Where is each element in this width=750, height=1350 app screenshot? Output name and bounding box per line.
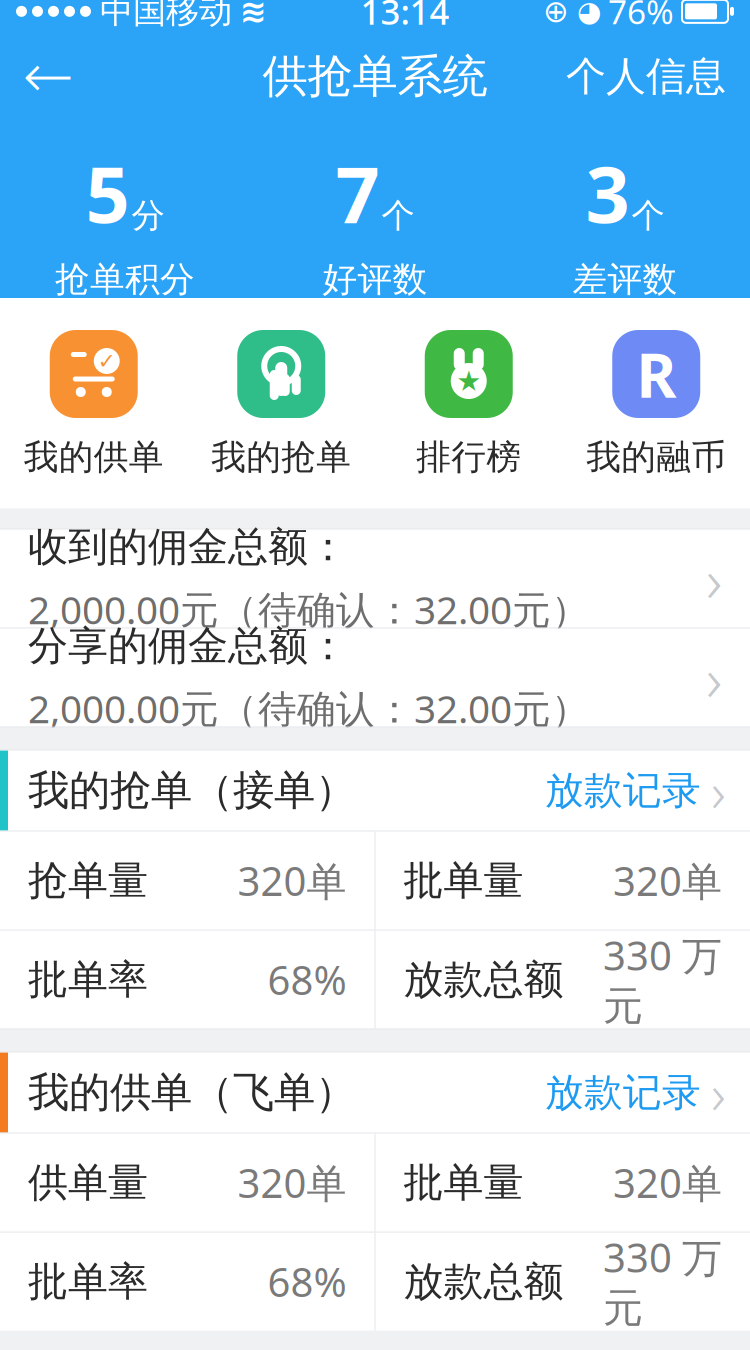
staticText: ★ [456, 365, 481, 397]
staticText: 中国移动 [100, 0, 232, 32]
staticText: 排行榜 [416, 436, 521, 479]
staticText: 我的供单 [24, 436, 164, 479]
button[interactable]: R [562, 330, 750, 479]
staticText: 批单量 [403, 1158, 523, 1207]
button[interactable]: 个人信息 [542, 38, 750, 114]
staticText: 我的抢单 [211, 436, 351, 479]
staticText: ✓ [98, 349, 116, 373]
staticText: 我的供单（飞单） [28, 1067, 356, 1118]
staticText: 2,000.00元（待确认：32.00元） [28, 682, 590, 734]
staticText: › [711, 753, 726, 828]
staticText: 我的融币 [586, 436, 726, 479]
staticText: 我的抢单（接单） [28, 765, 356, 816]
staticText: 供单量 [28, 1158, 148, 1207]
staticText: 7 [335, 141, 379, 244]
staticText: ← [22, 42, 73, 111]
staticText: 68% [267, 1255, 346, 1308]
button[interactable]: ✓ [0, 330, 187, 479]
staticText: ◕ [577, 0, 601, 27]
staticText: 批单率 [28, 1257, 148, 1306]
staticText: 分享的佣金总额： [28, 621, 348, 670]
staticText: 放款记录 [545, 767, 701, 814]
staticText: 2,000.00元（待确认：32.00元） [28, 583, 590, 635]
button[interactable]: Back [0, 38, 96, 114]
staticText: 好评数 [322, 258, 427, 301]
button[interactable]: 放款记录 [521, 751, 750, 831]
staticText: 5 [85, 141, 129, 244]
button[interactable]: ★ [375, 330, 562, 479]
staticText: 放款总额 [403, 1257, 563, 1306]
staticText: 个 [381, 195, 414, 236]
button[interactable]: 分享的佣金总额： [0, 629, 750, 727]
staticText: 320单 [613, 854, 722, 907]
button[interactable]: 放款记录 [521, 1053, 750, 1133]
staticText: 13:14 [360, 0, 449, 34]
staticText: 3 [585, 141, 629, 244]
staticText: 个人信息 [566, 52, 726, 101]
staticText: 320单 [237, 1156, 346, 1209]
staticText: ⊕ [543, 0, 569, 29]
staticText: 批单量 [403, 856, 523, 905]
staticText: 批单率 [28, 955, 148, 1004]
button[interactable]: 我的抢单 [187, 330, 375, 479]
staticText: 68% [267, 953, 346, 1006]
staticText: 330 万元 [603, 928, 722, 1031]
staticText: 320单 [237, 854, 346, 907]
staticText: 放款总额 [403, 955, 563, 1004]
staticText: 330 万元 [603, 1230, 722, 1333]
staticText: ≋ [240, 0, 267, 29]
button[interactable]: 收到的佣金总额： [0, 530, 750, 628]
staticText: 供抢单系统 [262, 48, 487, 104]
staticText: › [706, 637, 722, 718]
staticText: › [706, 538, 722, 619]
staticText: 分 [131, 195, 164, 236]
staticText: 76% [608, 0, 674, 33]
staticText: › [711, 1055, 726, 1130]
staticText: 320单 [613, 1156, 722, 1209]
staticText: 抢单量 [28, 856, 148, 905]
staticText: 放款记录 [545, 1069, 701, 1116]
staticText: R [636, 333, 676, 415]
staticText: 抢单积分 [55, 258, 195, 301]
staticText: 差评数 [572, 258, 677, 301]
staticText: 收到的佣金总额： [28, 522, 348, 571]
staticText: 个 [631, 195, 664, 236]
